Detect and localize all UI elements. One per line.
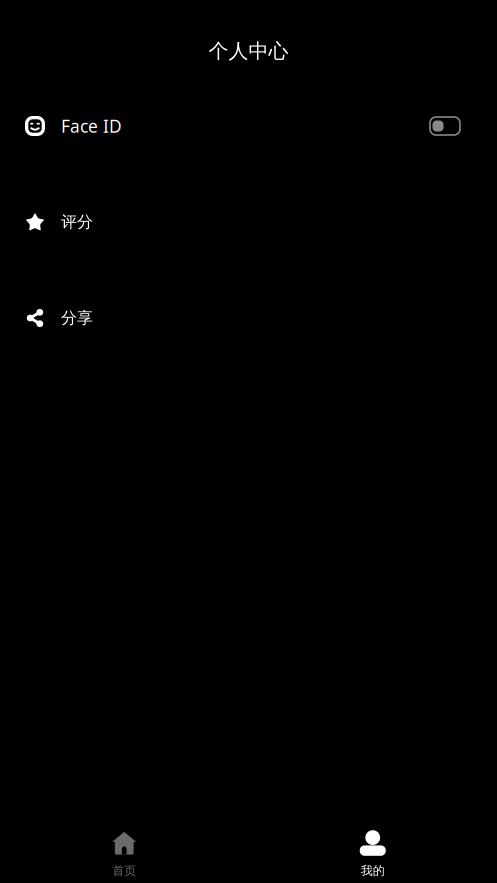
button[interactable]: Face ID — [0, 78, 497, 174]
button[interactable]: 我的 — [248, 830, 497, 878]
button[interactable]: 评分 — [0, 174, 497, 270]
staticText: 个人中心 — [208, 39, 288, 63]
button[interactable]: Face ID, off — [430, 117, 460, 135]
staticText: 首页 — [112, 863, 136, 878]
staticText: Face ID — [61, 114, 122, 137]
button[interactable]: 分享 — [0, 270, 497, 366]
staticText: 我的 — [361, 863, 385, 878]
staticText: 评分 — [61, 212, 93, 232]
staticText: 分享 — [61, 308, 93, 328]
button[interactable]: 首页 — [0, 830, 248, 878]
